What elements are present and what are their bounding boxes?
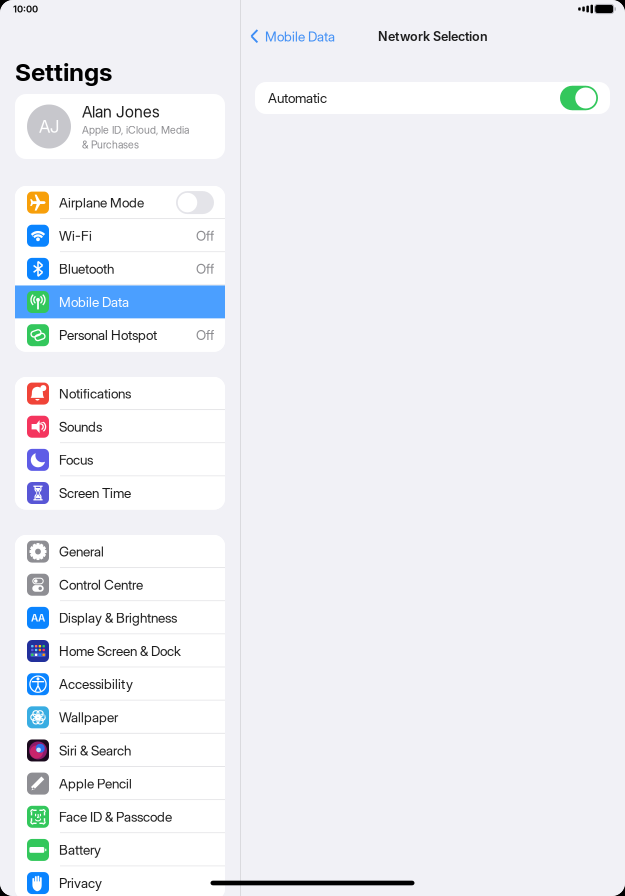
button[interactable]: Privacy [15,866,225,896]
staticText: General [59,543,104,560]
staticText: Network Selection [378,29,488,44]
staticText: Automatic [268,90,327,106]
button[interactable]: Control Centre [15,568,225,601]
button[interactable]: Wallpaper [15,701,225,734]
button[interactable]: Home Screen & Dock [15,634,225,668]
button[interactable]: Airplane Mode [15,186,225,219]
staticText: Screen Time [59,485,131,501]
staticText: Focus [59,452,93,468]
button[interactable]: Screen Time [15,476,225,509]
staticText: Accessibility [59,676,133,692]
button[interactable]: Battery [15,833,225,866]
button[interactable]: Notifications [15,377,225,410]
staticText: Display & Brightness [59,610,177,626]
button[interactable]: Mobile Data [241,21,343,51]
staticText: Apple ID, iCloud, Media [82,123,189,136]
button[interactable]: Siri & Search [15,734,225,767]
staticText: Mobile Data [265,28,335,45]
staticText: Home Screen & Dock [59,643,181,659]
button[interactable]: AA [15,601,225,634]
staticText: Wallpaper [59,709,118,726]
staticText: Airplane Mode [59,194,144,211]
staticText: & Purchases [82,138,139,151]
button[interactable]: Bluetooth [15,252,225,285]
staticText: Settings [15,57,112,87]
staticText: Privacy [59,875,102,891]
staticText: Notifications [59,385,131,402]
staticText: Apple Pencil [59,775,132,792]
button[interactable]: General [15,535,225,568]
button[interactable]: Focus [15,443,225,476]
staticText: Siri & Search [59,742,131,759]
staticText: Mobile Data [59,294,129,310]
staticText: Bluetooth [59,261,114,277]
staticText: Off [196,227,214,244]
staticText: 10:00 [13,3,38,15]
staticText: Face ID & Passcode [59,808,172,825]
staticText: Off [196,327,214,343]
staticText: Off [196,261,214,277]
button[interactable]: Sounds [15,410,225,443]
button[interactable]: Face ID & Passcode [15,800,225,833]
staticText: Sounds [59,418,102,435]
button[interactable]: Accessibility [15,668,225,701]
staticText: Battery [59,842,101,858]
button[interactable]: Mobile Data [15,285,225,318]
staticText: Wi-Fi [59,227,92,244]
staticText: Alan Jones [82,102,160,121]
staticText: AJ [39,116,59,137]
button[interactable]: Personal Hotspot [15,319,225,352]
staticText: AA [31,612,45,624]
staticText: Control Centre [59,576,143,593]
button[interactable]: Apple Pencil [15,767,225,800]
button[interactable]: AJ [15,94,225,159]
button[interactable]: Wi-Fi [15,219,225,252]
staticText: Personal Hotspot [59,327,157,343]
